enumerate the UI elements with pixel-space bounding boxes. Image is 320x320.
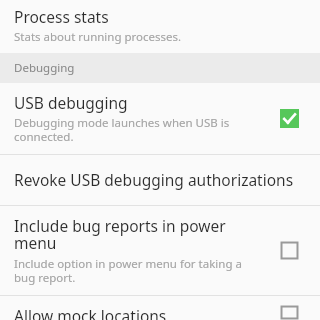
button[interactable]: Include bug reports in power menu, disab… bbox=[272, 233, 306, 267]
staticText: Include bug reports in power menu bbox=[14, 215, 264, 254]
staticText: Process stats bbox=[14, 6, 109, 27]
staticText: Allow mock locations bbox=[14, 305, 167, 320]
button[interactable]: Allow mock locations bbox=[0, 296, 320, 320]
button[interactable]: Revoke USB debugging authorizations bbox=[0, 155, 320, 205]
button[interactable]: Process stats bbox=[0, 0, 320, 53]
staticText: Debugging mode launches when USB is conn… bbox=[14, 115, 264, 144]
staticText: Include option in power menu for taking … bbox=[14, 256, 264, 285]
staticText: Stats about running processes. bbox=[14, 29, 182, 45]
staticText: USB debugging bbox=[14, 92, 128, 113]
button[interactable]: USB debugging, enabled bbox=[272, 101, 306, 135]
staticText: Revoke USB debugging authorizations bbox=[14, 169, 306, 190]
staticText: Debugging bbox=[14, 60, 75, 76]
button[interactable]: Allow mock locations, disabled bbox=[272, 305, 306, 320]
button[interactable]: USB debugging bbox=[0, 83, 320, 154]
button[interactable]: Include bug reports in power menu bbox=[0, 206, 320, 295]
